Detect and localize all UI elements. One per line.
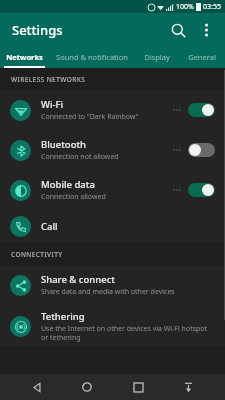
button[interactable]: Wi-Fi [0,90,225,130]
staticText: Display [144,52,170,62]
button[interactable]: Hide navigation bar [175,374,201,400]
button[interactable]: General [178,46,225,68]
staticText: 03:55 [203,2,221,12]
staticText: Bluetooth [41,138,87,151]
staticText: Connected to "Dark Rainbow" [41,112,139,122]
staticText: Sound & notification [56,52,128,62]
staticText: Share & connect [41,273,115,286]
button[interactable]: Mobile data [0,170,225,210]
staticText: Share data and media with other devices [41,287,175,297]
staticText: General [188,52,216,62]
button[interactable]: On [188,103,215,117]
staticText: WIRELESS NETWORKS [11,75,86,84]
button[interactable]: Recents [125,374,151,400]
button[interactable]: Share & connect [0,265,225,305]
button[interactable]: Bluetooth [0,130,225,170]
button[interactable]: Search [163,15,193,45]
button[interactable]: Back [24,374,50,400]
button[interactable]: Sound & notification [49,46,135,68]
button[interactable]: Tethering [0,305,225,347]
staticText: Settings [12,21,63,39]
staticText: Wi-Fi [41,98,64,111]
staticText: Networks [6,52,43,62]
staticText: Use the Internet on other devices via Wi… [41,324,215,342]
staticText: Connection not allowed [41,152,119,162]
button[interactable]: Off [188,143,215,157]
button[interactable]: Home [74,374,100,400]
button[interactable]: Networks [0,46,49,68]
staticText: CONNECTIVITY [11,250,63,259]
staticText: Connection allowed [41,192,106,202]
staticText: Call [41,220,58,233]
button[interactable]: More options [193,17,219,43]
staticText: Tethering [41,310,85,323]
button[interactable]: Call [0,210,225,243]
staticText: Mobile data [41,178,95,191]
staticText: 100% [176,2,194,12]
button[interactable]: On [188,183,215,197]
button[interactable]: Display [135,46,178,68]
